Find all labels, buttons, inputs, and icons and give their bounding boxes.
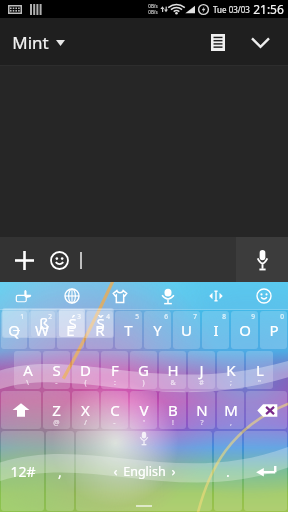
staticText: - xyxy=(113,418,116,428)
staticText: U xyxy=(181,320,192,340)
button[interactable]: 7 xyxy=(173,311,200,349)
staticText: & xyxy=(170,378,176,388)
button[interactable]: Enter xyxy=(244,431,287,511)
staticText: ‹ xyxy=(113,462,118,480)
button[interactable]: / xyxy=(72,391,99,429)
staticText: Š xyxy=(96,313,105,333)
staticText: - xyxy=(55,378,58,388)
button[interactable]: . xyxy=(214,431,242,511)
button[interactable]: Add xyxy=(6,242,42,278)
staticText: H xyxy=(167,360,179,380)
button[interactable]: ß xyxy=(31,309,57,337)
staticText: 21:56 xyxy=(253,1,284,17)
staticText: ! xyxy=(172,418,174,428)
button[interactable]: Collapse xyxy=(242,24,278,60)
staticText: ' xyxy=(143,418,145,428)
staticText: English xyxy=(123,463,166,480)
staticText: 9 xyxy=(251,312,255,321)
button[interactable]: : xyxy=(101,351,128,389)
staticText: X xyxy=(81,400,90,420)
button[interactable]: 5 xyxy=(115,311,142,349)
button[interactable]: ? xyxy=(188,391,215,429)
staticText: ) xyxy=(142,378,145,388)
staticText: 5 xyxy=(135,312,139,321)
staticText: 0B/s xyxy=(148,9,158,15)
button[interactable]: & xyxy=(159,351,186,389)
button[interactable]: 3 xyxy=(57,311,84,349)
staticText: P xyxy=(269,320,279,340)
button[interactable]: Keyboard xyxy=(0,282,48,310)
staticText: R xyxy=(95,320,105,340)
button[interactable]: Voice xyxy=(144,282,192,310)
staticText: Tue 03/03 xyxy=(213,4,250,15)
button[interactable]: List xyxy=(200,24,236,60)
button[interactable]: Voice input xyxy=(236,237,288,282)
staticText: M xyxy=(224,400,238,420)
staticText: O xyxy=(239,320,251,340)
button[interactable]: 0 xyxy=(260,311,287,349)
button[interactable]: ( xyxy=(72,351,99,389)
staticText: Z xyxy=(52,400,61,420)
staticText: › xyxy=(171,462,176,480)
button[interactable]: ! xyxy=(159,391,186,429)
staticText: 7 xyxy=(193,312,197,321)
button[interactable]: Ś xyxy=(59,309,85,337)
button[interactable]: - xyxy=(43,351,70,389)
button[interactable]: , xyxy=(217,391,244,429)
staticText: / xyxy=(84,418,87,428)
staticText: T xyxy=(124,320,133,340)
staticText: 3 xyxy=(77,312,81,321)
button[interactable]: Cursor xyxy=(192,282,240,310)
button[interactable]: Theme xyxy=(96,282,144,310)
button[interactable]: 4 xyxy=(86,311,113,349)
staticText: K xyxy=(226,360,236,380)
button[interactable]: # xyxy=(188,351,215,389)
staticText: ? xyxy=(200,418,204,428)
staticText: 0B/s xyxy=(148,3,158,9)
button[interactable]: ; xyxy=(217,351,244,389)
staticText: 1 xyxy=(20,312,24,321)
staticText: @ xyxy=(53,418,60,428)
button[interactable]: Š xyxy=(87,309,113,337)
staticText: I xyxy=(213,320,219,340)
button[interactable]: 2 xyxy=(29,311,55,349)
staticText: ; xyxy=(230,378,232,388)
button[interactable]: ' xyxy=(130,391,157,429)
button[interactable]: ) xyxy=(130,351,157,389)
button[interactable]: @ xyxy=(43,391,70,429)
staticText: J xyxy=(199,360,204,380)
staticText: ß xyxy=(39,313,49,333)
staticText: E xyxy=(66,320,75,340)
button[interactable]: - xyxy=(101,391,128,429)
button[interactable]: Shift xyxy=(1,391,41,429)
staticText: B xyxy=(168,400,178,420)
button[interactable]: _ xyxy=(3,309,29,337)
button[interactable]: \ xyxy=(14,351,41,389)
button[interactable]: Emoji xyxy=(240,282,288,310)
button[interactable]: 12# xyxy=(1,431,44,511)
button[interactable]: ‹ xyxy=(76,431,212,511)
button[interactable]: , xyxy=(46,431,74,511)
staticText: . xyxy=(226,462,230,481)
staticText: 4 xyxy=(106,312,110,321)
button[interactable]: Backspace xyxy=(246,391,287,429)
staticText: G xyxy=(138,360,149,380)
button[interactable]: 8 xyxy=(202,311,229,349)
staticText: W xyxy=(35,320,49,340)
button[interactable]: Emoji xyxy=(42,243,76,277)
button[interactable]: " xyxy=(246,351,273,389)
button[interactable]: Mint xyxy=(0,25,77,60)
button[interactable]: Language xyxy=(48,282,96,310)
staticText: Y xyxy=(153,320,162,340)
staticText: 2 xyxy=(48,312,52,321)
staticText: Q xyxy=(8,320,20,340)
button[interactable]: 9 xyxy=(231,311,258,349)
staticText: F xyxy=(111,360,119,380)
staticText: 6 xyxy=(164,312,168,321)
button[interactable]: 1 xyxy=(1,311,27,349)
staticText: \ xyxy=(26,378,29,388)
staticText: A xyxy=(23,360,33,380)
staticText: D xyxy=(80,360,91,380)
button[interactable]: 6 xyxy=(144,311,171,349)
staticText: " xyxy=(258,378,261,388)
